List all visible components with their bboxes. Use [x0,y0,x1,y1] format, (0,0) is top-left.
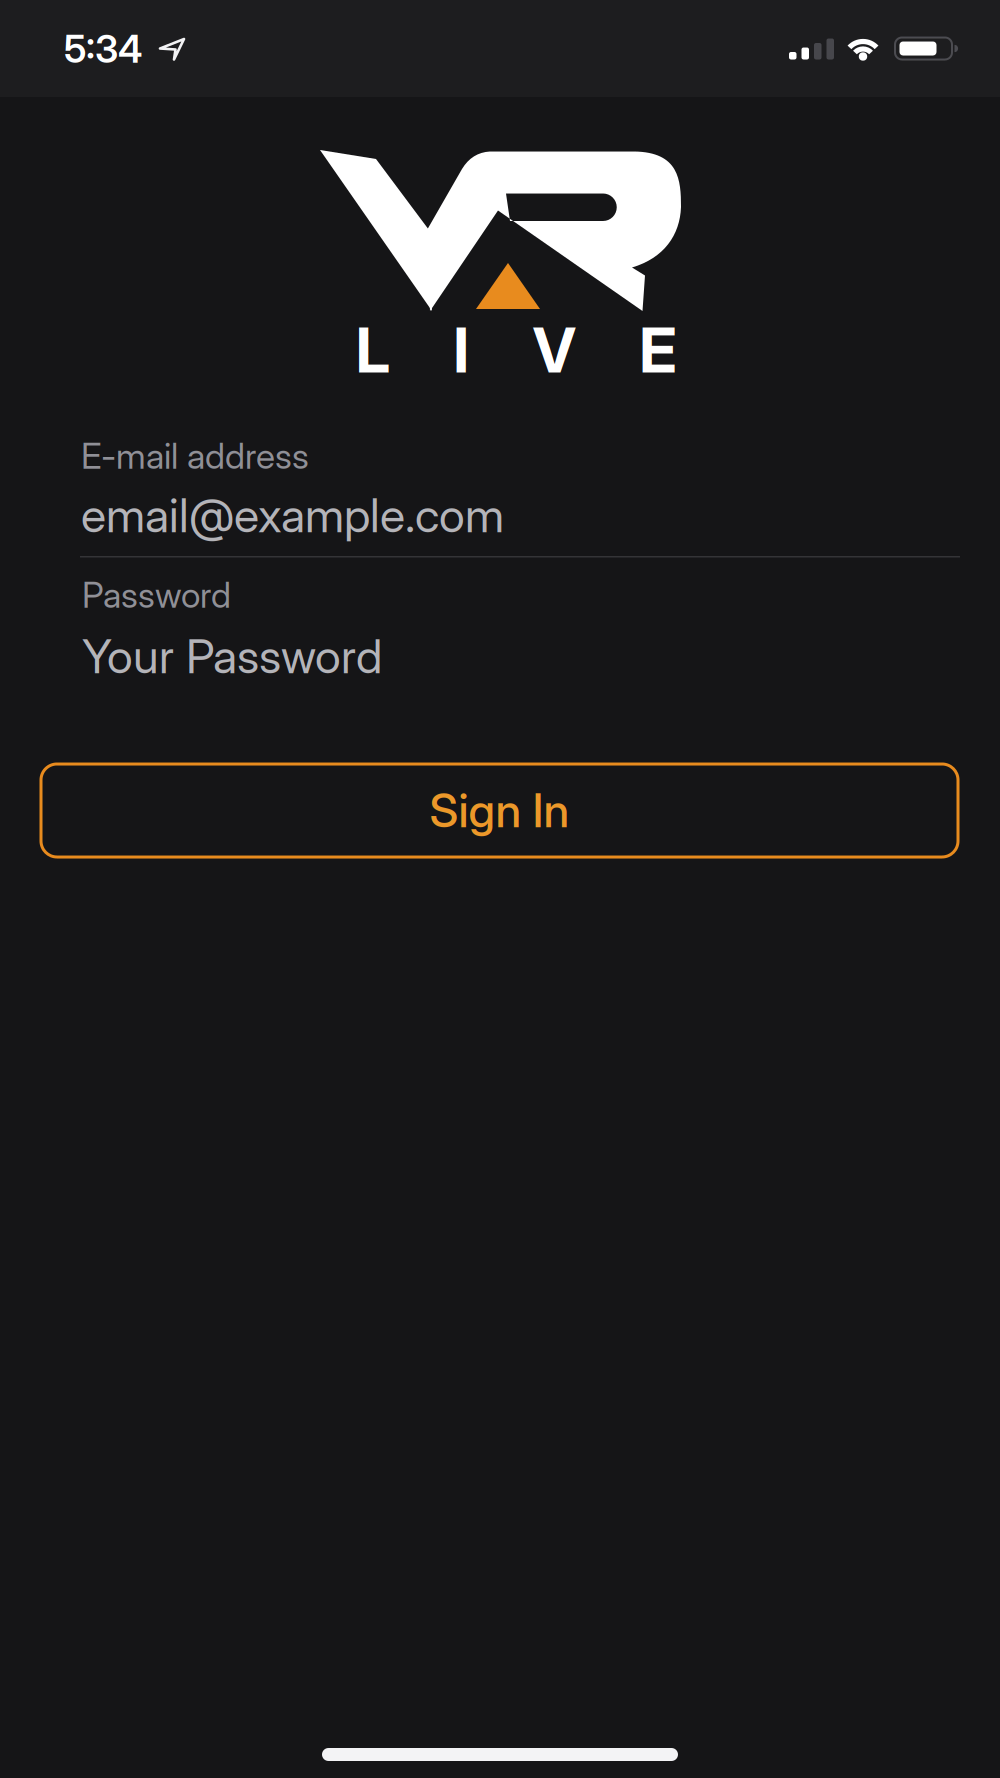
button[interactable]: E-mail address [81,487,961,543]
staticText: Password [82,573,231,616]
staticText: 5:34 [64,26,142,72]
button[interactable]: Sign In [41,764,958,857]
staticText: V [533,313,576,387]
staticText: I [453,313,469,387]
staticText: email@example.com [81,487,504,543]
staticText: E [639,313,676,387]
button[interactable]: Password [82,628,962,684]
staticText: L [356,313,390,387]
staticText: Sign In [429,783,569,838]
staticText: Your Password [82,628,382,684]
staticText: E-mail address [81,434,309,477]
